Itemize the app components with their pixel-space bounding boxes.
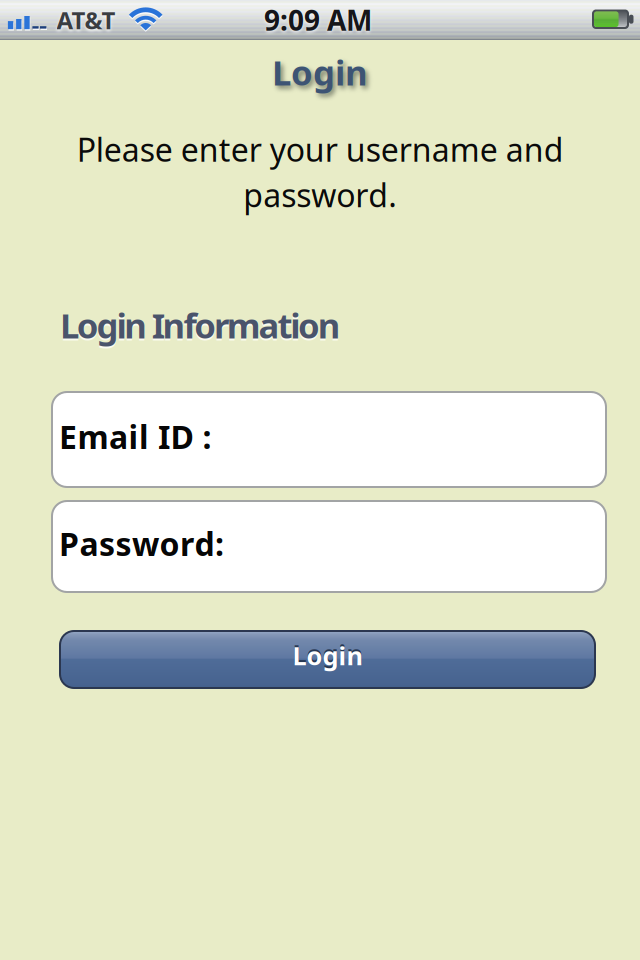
staticText: AT&T xyxy=(56,4,115,36)
staticText: Login xyxy=(292,639,362,672)
button[interactable]: Email ID : xyxy=(51,391,607,488)
staticText: Login Information xyxy=(60,304,341,350)
staticText: Email ID : xyxy=(59,415,211,458)
button[interactable]: Login xyxy=(59,630,596,689)
staticText: Please enter your username and password. xyxy=(76,128,563,216)
staticText: Login xyxy=(272,49,368,95)
staticText: Login xyxy=(292,637,362,670)
staticText: Password: xyxy=(59,522,224,565)
staticText: 9:09 AM xyxy=(264,1,372,39)
staticText: Login Information xyxy=(60,302,341,348)
button[interactable]: Password: xyxy=(51,500,607,593)
